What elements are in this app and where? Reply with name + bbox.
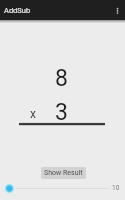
staticText: Show Result: [44, 169, 83, 177]
button[interactable]: More options: [110, 0, 125, 20]
staticText: x: [30, 107, 36, 121]
button[interactable]: Show Result: [41, 167, 86, 179]
staticText: 3: [55, 99, 68, 126]
staticText: AddSub: [4, 6, 31, 15]
staticText: 8: [55, 65, 68, 92]
staticText: 10: [112, 184, 120, 192]
